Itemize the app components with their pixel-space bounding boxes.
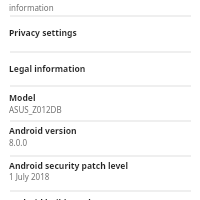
staticText: Privacy settings [9,27,77,39]
staticText: ASUS_Z012DB [9,104,62,115]
staticText: Android version [9,125,77,137]
staticText: Android build number [9,197,103,200]
staticText: 1 July 2018 [9,171,50,182]
button[interactable]: information [0,0,200,15]
button[interactable]: Android security patch level [0,156,200,190]
staticText: information [9,2,54,13]
button[interactable]: Privacy settings [0,16,200,51]
staticText: 8.0.0 [9,137,28,148]
button[interactable]: Android version [0,121,200,155]
button[interactable]: Model [0,86,200,120]
staticText: Android security patch level [9,160,129,172]
staticText: Legal information [9,63,86,75]
button[interactable]: Android build number [0,191,200,200]
button[interactable]: Legal information [0,52,200,85]
staticText: Model [9,92,36,104]
